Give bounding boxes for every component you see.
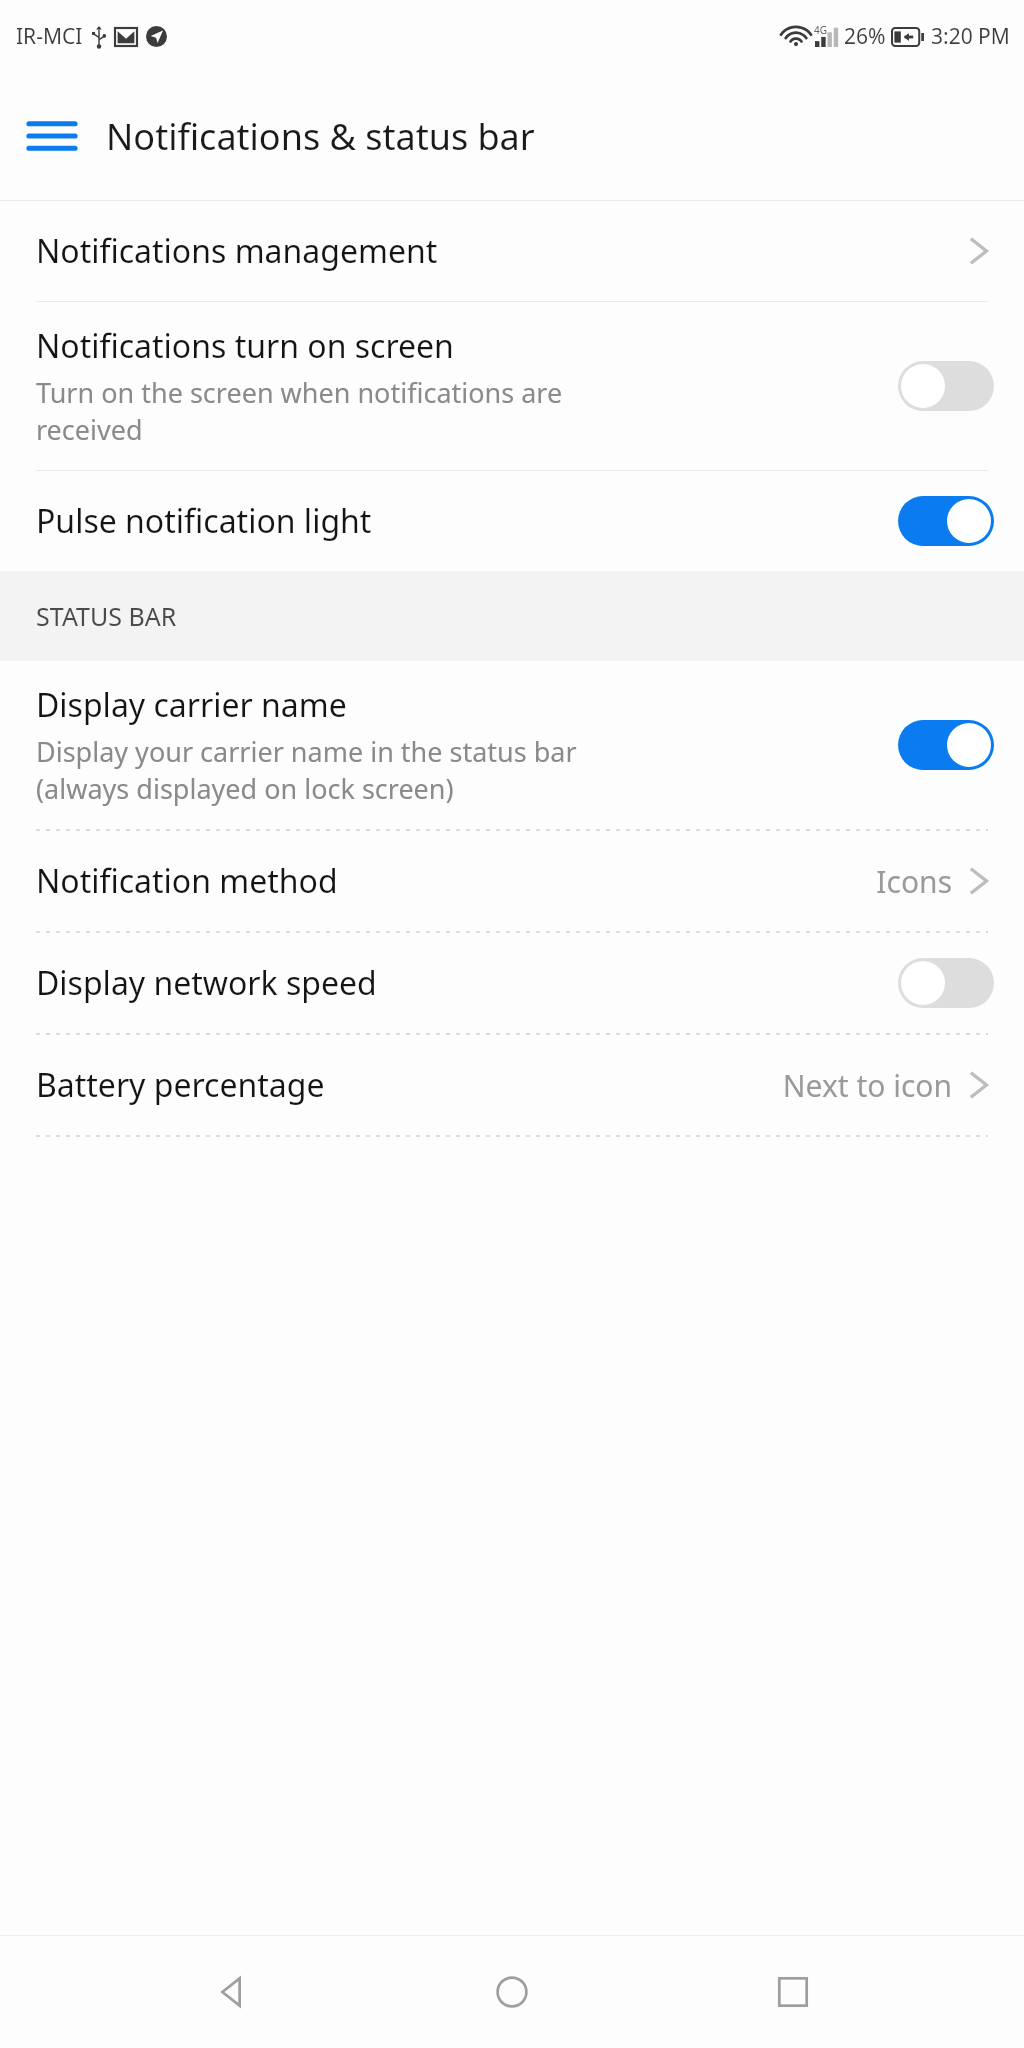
staticText: 26%: [844, 22, 886, 51]
staticText: Display network speed: [36, 961, 377, 1005]
button[interactable]: Display network speed: [0, 933, 1024, 1033]
staticText: Display carrier name: [36, 683, 347, 727]
button[interactable]: Battery percentage: [0, 1035, 1024, 1135]
staticText: Notification method: [36, 859, 338, 903]
staticText: Notifications management: [36, 229, 438, 273]
staticText: Pulse notification light: [36, 499, 372, 543]
button[interactable]: On: [896, 495, 996, 547]
staticText: Notifications & status bar: [106, 112, 535, 161]
staticText: 4G: [814, 23, 827, 37]
staticText: STATUS BAR: [36, 599, 177, 633]
button[interactable]: Notifications management: [0, 201, 1024, 301]
staticText: Battery percentage: [36, 1063, 325, 1107]
staticText: Turn on the screen when notifications ar…: [36, 374, 563, 448]
button[interactable]: Off: [896, 360, 996, 412]
staticText: 3:20 PM: [931, 22, 1010, 51]
button[interactable]: On: [896, 719, 996, 771]
staticText: Next to icon: [782, 1065, 952, 1106]
button[interactable]: Notifications turn on screen: [0, 302, 1024, 470]
staticText: Notifications turn on screen: [36, 324, 454, 368]
staticText: Display your carrier name in the status …: [36, 733, 577, 807]
button[interactable]: Off: [896, 957, 996, 1009]
button[interactable]: Back: [181, 1942, 281, 2042]
button[interactable]: Pulse notification light: [0, 471, 1024, 571]
staticText: IR-MCI: [16, 22, 83, 51]
button[interactable]: Notification method: [0, 831, 1024, 931]
button[interactable]: Recents: [743, 1942, 843, 2042]
staticText: Icons: [876, 861, 952, 902]
button[interactable]: Home: [462, 1942, 562, 2042]
button[interactable]: Menu: [16, 100, 88, 172]
button[interactable]: Display carrier name: [0, 661, 1024, 829]
